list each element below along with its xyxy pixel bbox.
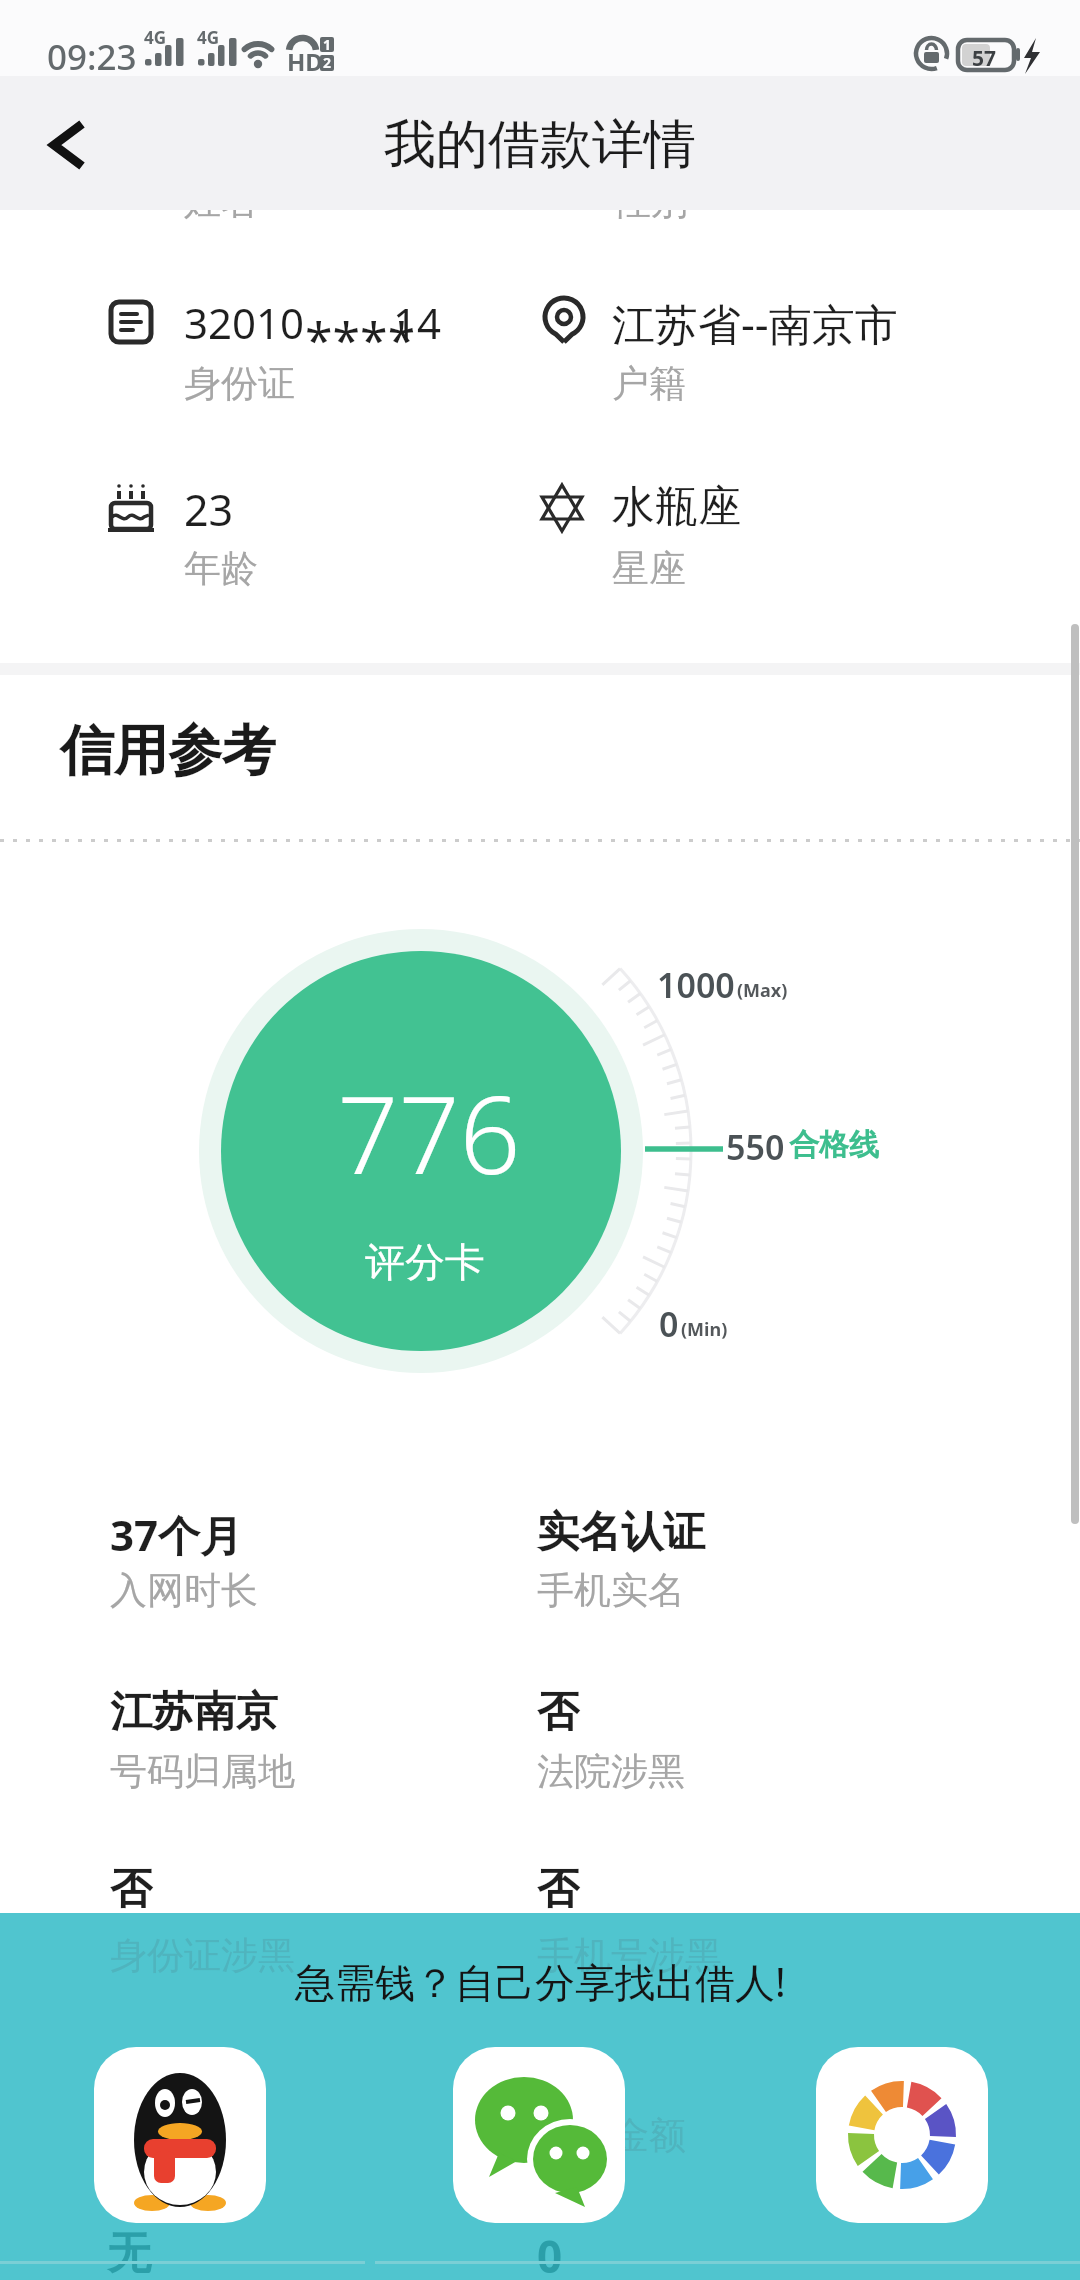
staticText: HD <box>287 45 323 78</box>
staticText: 江苏南京 <box>110 1686 278 1739</box>
staticText: 否 <box>537 1686 579 1739</box>
staticText: 否 <box>537 1863 579 1916</box>
staticText: 4G <box>144 26 167 49</box>
staticText: 身份证 <box>184 360 295 407</box>
staticText: 评分卡 <box>365 1237 485 1287</box>
staticText: 09:23 <box>47 33 137 81</box>
staticText: (Max) <box>737 978 788 1003</box>
staticText: 我的借款详情 <box>384 112 696 178</box>
staticText: 合格线 <box>789 1126 879 1164</box>
staticText: 急需钱？自己分享找出借人! <box>295 1954 786 2009</box>
staticText: 4G <box>197 26 220 49</box>
staticText: 0 <box>659 1301 679 1347</box>
staticText: 户籍 <box>612 360 686 407</box>
staticText: 姓名 <box>184 178 258 225</box>
staticText: 776 <box>337 1060 521 1206</box>
button[interactable] <box>30 100 120 190</box>
button[interactable] <box>94 2047 266 2223</box>
staticText: 23 <box>184 480 234 539</box>
button[interactable] <box>453 2047 625 2223</box>
staticText: 57 <box>972 44 997 73</box>
staticText: 实名认证 <box>537 1506 705 1559</box>
staticText: 入网时长 <box>110 1567 258 1614</box>
staticText: 年龄 <box>184 545 258 592</box>
button[interactable] <box>816 2047 988 2223</box>
staticText: 32010 <box>184 294 305 351</box>
staticText: 水瓶座 <box>612 480 741 534</box>
staticText: 金额 <box>612 2112 686 2159</box>
staticText: 1 <box>323 35 332 54</box>
staticText: 江苏省--南京市 <box>612 294 898 353</box>
staticText: 否 <box>110 1863 152 1916</box>
staticText: **** <box>305 306 416 374</box>
staticText: 号码归属地 <box>110 1748 295 1795</box>
staticText: 37个月 <box>110 1506 243 1563</box>
staticText: 法院涉黑 <box>537 1748 685 1795</box>
staticText: 手机号涉黑 <box>537 1932 722 1979</box>
staticText: 信用参考 <box>60 717 276 785</box>
staticText: 550 <box>726 1124 785 1170</box>
staticText: 0 <box>537 2226 563 2280</box>
staticText: 性别 <box>614 178 688 225</box>
staticText: 1000 <box>657 962 735 1008</box>
staticText: 2 <box>323 53 332 72</box>
staticText: 星座 <box>612 545 686 592</box>
staticText: 手机实名 <box>537 1567 685 1614</box>
staticText: (Min) <box>681 1317 728 1342</box>
staticText: 身份证涉黑 <box>110 1932 295 1979</box>
staticText: 14 <box>393 294 442 351</box>
staticText: 无 <box>107 2226 151 2280</box>
